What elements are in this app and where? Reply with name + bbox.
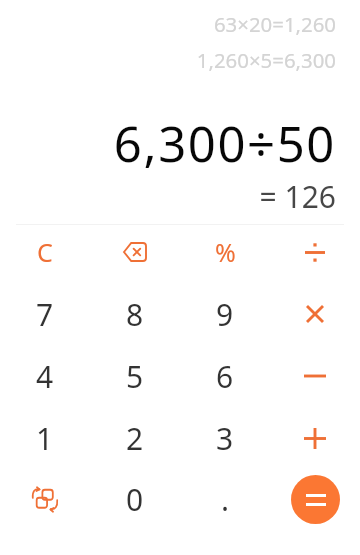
staticText: 1,260×5=6,300 [196,46,336,74]
button[interactable]: 7 [0,283,90,345]
button[interactable]: Equals [291,475,340,524]
staticText: 9 [216,294,234,335]
button[interactable]: Plus [270,407,360,469]
button[interactable]: 0 [90,468,180,530]
button[interactable]: 3 [180,407,270,469]
staticText: 1 [36,418,54,459]
staticText: 7 [36,294,54,335]
staticText: 3 [216,418,234,459]
button[interactable]: . [180,468,270,530]
button[interactable]: Minus [270,345,360,407]
button[interactable]: Divide [270,221,360,283]
staticText: 2 [126,418,144,459]
staticText: . [221,479,230,520]
button[interactable]: Backspace [90,221,180,283]
staticText: 6 [216,356,234,397]
button[interactable]: Multiply [270,283,360,345]
button[interactable]: Unit converter [0,468,90,530]
staticText: 4 [36,356,54,397]
button[interactable]: 1 [0,407,90,469]
button[interactable]: 4 [0,345,90,407]
staticText: 8 [126,294,144,335]
staticText: 0 [126,479,144,520]
button[interactable]: 6 [180,345,270,407]
button[interactable]: 2 [90,407,180,469]
button[interactable]: 5 [90,345,180,407]
button[interactable]: 9 [180,283,270,345]
staticText: 6,300÷50 [113,110,336,177]
staticText: % [215,235,236,269]
staticText: 5 [126,356,144,397]
button[interactable]: C [0,221,90,283]
staticText: 63×20=1,260 [213,10,336,38]
button[interactable]: % [180,221,270,283]
staticText: C [37,235,53,269]
staticText: = 126 [259,176,336,217]
button[interactable]: 8 [90,283,180,345]
